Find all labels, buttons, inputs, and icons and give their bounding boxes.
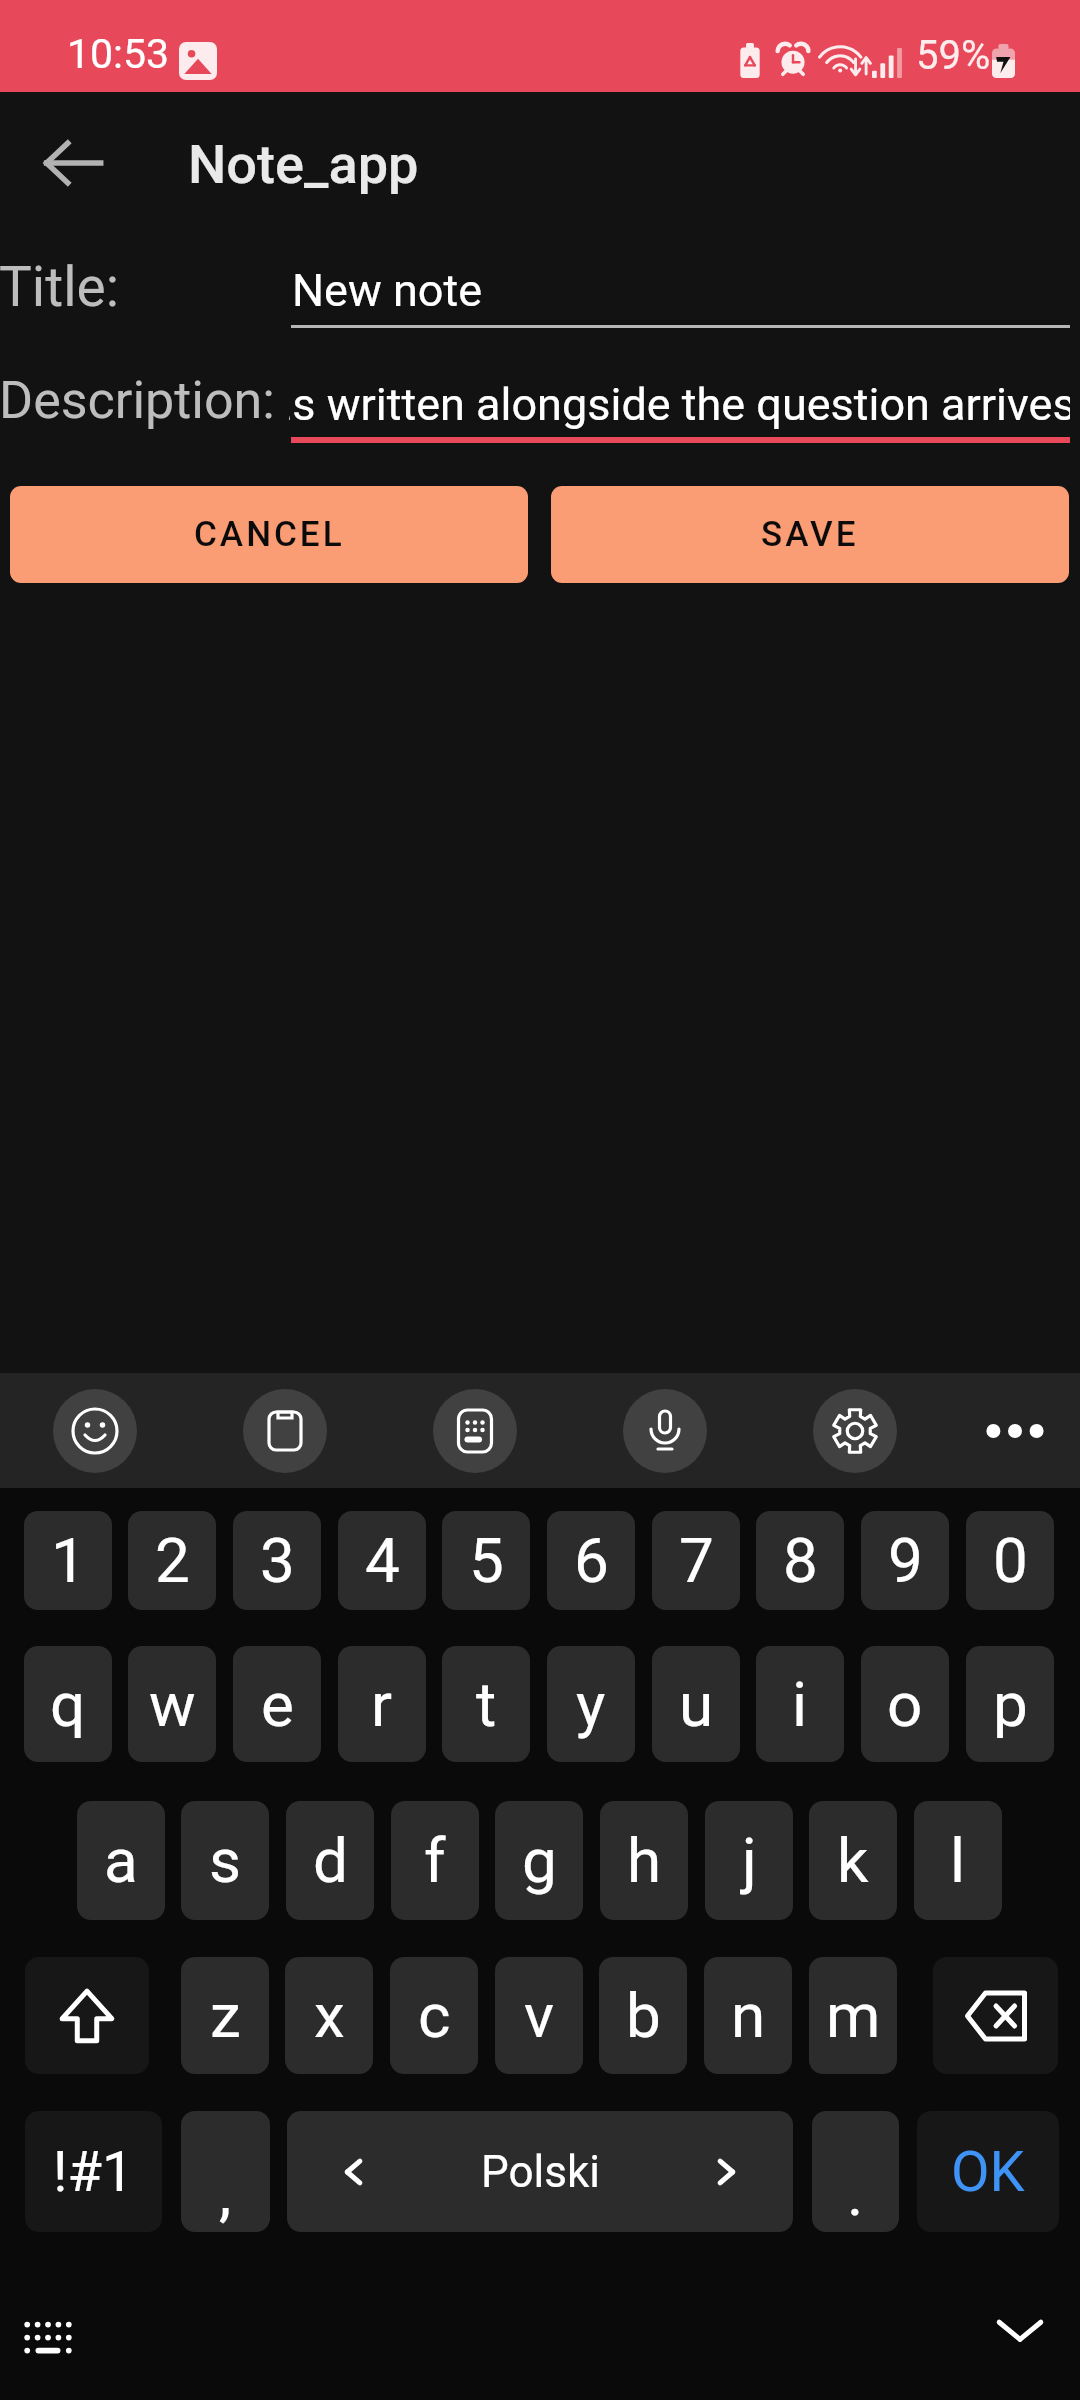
button[interactable]: s: [181, 1801, 269, 1920]
staticText: !#1: [53, 2139, 134, 2205]
button[interactable]: j: [705, 1801, 793, 1920]
button[interactable]: a: [77, 1801, 165, 1920]
button[interactable]: 9: [861, 1511, 949, 1610]
button[interactable]: o: [861, 1646, 949, 1762]
button[interactable]: 7: [652, 1511, 740, 1610]
button[interactable]: l: [914, 1801, 1002, 1920]
staticText: 1: [51, 1524, 86, 1597]
staticText: a: [104, 1824, 138, 1897]
button[interactable]: e: [233, 1646, 321, 1762]
staticText: 8: [783, 1524, 818, 1597]
staticText: 3: [260, 1524, 295, 1597]
staticText: SAVE: [761, 514, 859, 555]
button[interactable]: Switch keyboard: [16, 2303, 80, 2367]
button[interactable]: u: [652, 1646, 740, 1762]
button[interactable]: k: [809, 1801, 897, 1920]
staticText: New note: [292, 264, 483, 317]
staticText: Polski: [481, 2146, 600, 2198]
button[interactable]: More options: [973, 1389, 1057, 1473]
staticText: i: [792, 1668, 808, 1741]
staticText: b: [626, 1979, 661, 2052]
button[interactable]: x: [285, 1957, 373, 2074]
staticText: m: [826, 1979, 881, 2052]
staticText: k: [837, 1824, 869, 1897]
button[interactable]: .: [812, 2111, 899, 2232]
button[interactable]: 3: [233, 1511, 321, 1610]
button[interactable]: 8: [756, 1511, 844, 1610]
button[interactable]: Settings: [813, 1389, 897, 1473]
staticText: s: [209, 1824, 241, 1897]
button[interactable]: New note: [291, 250, 1070, 328]
button[interactable]: d: [286, 1801, 374, 1920]
button[interactable]: Back: [40, 130, 106, 196]
staticText: Description:: [0, 370, 275, 431]
button[interactable]: Clipboard: [243, 1389, 327, 1473]
button[interactable]: h: [600, 1801, 688, 1920]
button[interactable]: y: [547, 1646, 635, 1762]
button[interactable]: g: [495, 1801, 583, 1920]
button[interactable]: 1: [24, 1511, 112, 1610]
button[interactable]: Voice input: [623, 1389, 707, 1473]
staticText: y: [576, 1668, 606, 1741]
button[interactable]: w: [128, 1646, 216, 1762]
button[interactable]: Keypad: [433, 1389, 517, 1473]
button[interactable]: i: [756, 1646, 844, 1762]
staticText: Note_app: [188, 133, 419, 196]
staticText: was written alongside the question arriv…: [289, 378, 1070, 431]
staticText: f: [424, 1824, 446, 1897]
button[interactable]: OK: [917, 2111, 1059, 2232]
button[interactable]: b: [599, 1957, 687, 2074]
button[interactable]: Polski: [287, 2111, 793, 2232]
button[interactable]: ,: [181, 2111, 270, 2232]
staticText: e: [261, 1668, 294, 1741]
button[interactable]: t: [442, 1646, 530, 1762]
staticText: d: [313, 1824, 348, 1897]
staticText: 10:53: [67, 30, 170, 78]
staticText: p: [993, 1668, 1028, 1741]
staticText: c: [418, 1979, 451, 2052]
staticText: ,: [219, 2157, 232, 2230]
staticText: 4: [365, 1524, 400, 1597]
button[interactable]: was written alongside the question arriv…: [289, 366, 1070, 443]
button[interactable]: n: [704, 1957, 792, 2074]
button[interactable]: 5: [442, 1511, 530, 1610]
staticText: l: [950, 1824, 966, 1897]
staticText: OK: [951, 2139, 1025, 2205]
button[interactable]: Shift: [25, 1957, 149, 2074]
button[interactable]: 6: [547, 1511, 635, 1610]
button[interactable]: CANCEL: [10, 486, 528, 583]
staticText: o: [887, 1668, 923, 1741]
staticText: u: [679, 1668, 714, 1741]
staticText: Title:: [0, 255, 120, 319]
button[interactable]: 4: [338, 1511, 426, 1610]
staticText: 59%: [916, 32, 991, 79]
staticText: v: [524, 1979, 555, 2052]
button[interactable]: q: [24, 1646, 112, 1762]
button[interactable]: Hide keyboard: [988, 2298, 1052, 2362]
other: Shift: [60, 1989, 114, 2043]
staticText: h: [627, 1824, 662, 1897]
button[interactable]: 2: [128, 1511, 216, 1610]
button[interactable]: Backspace: [933, 1957, 1058, 2074]
button[interactable]: Emoji: [53, 1389, 137, 1473]
staticText: x: [314, 1979, 345, 2052]
staticText: g: [522, 1824, 557, 1897]
button[interactable]: m: [809, 1957, 897, 2074]
staticText: j: [742, 1824, 757, 1897]
button[interactable]: c: [390, 1957, 478, 2074]
button[interactable]: v: [495, 1957, 583, 2074]
button[interactable]: 0: [966, 1511, 1054, 1610]
staticText: q: [50, 1668, 86, 1741]
button[interactable]: !#1: [25, 2111, 162, 2232]
staticText: 5: [469, 1524, 504, 1597]
staticText: t: [476, 1668, 497, 1741]
button[interactable]: p: [966, 1646, 1054, 1762]
button[interactable]: r: [338, 1646, 426, 1762]
staticText: .: [847, 2157, 864, 2230]
button[interactable]: SAVE: [551, 486, 1069, 583]
other: Backspace: [965, 1991, 1027, 2041]
button[interactable]: z: [181, 1957, 269, 2074]
staticText: 2: [155, 1524, 190, 1597]
button[interactable]: f: [391, 1801, 479, 1920]
staticText: w: [149, 1668, 196, 1741]
